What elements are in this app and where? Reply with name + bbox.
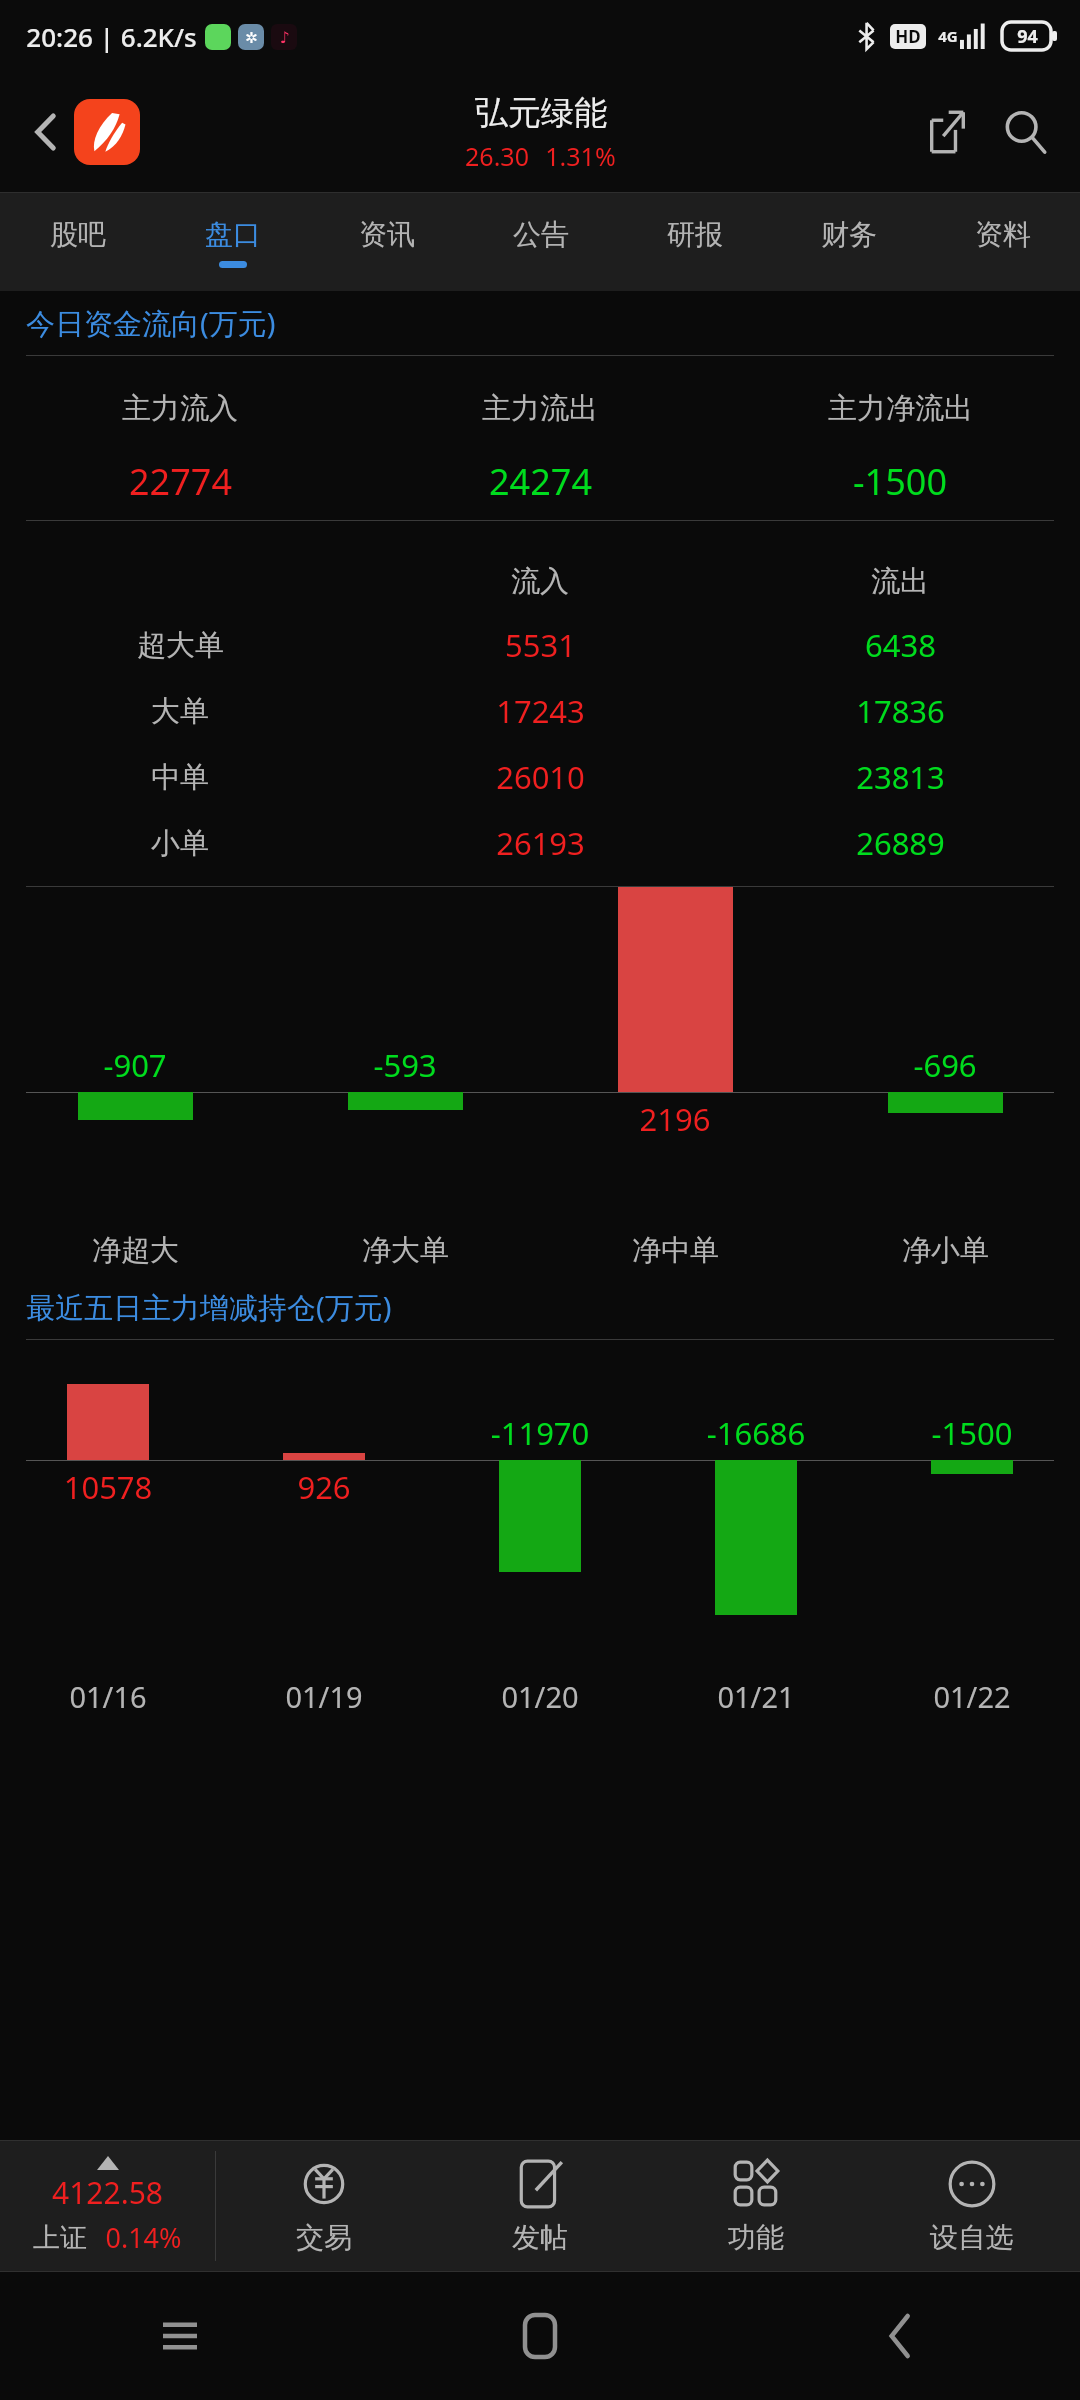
staticText: 22774 xyxy=(129,457,232,506)
staticText: -1500 xyxy=(864,1412,1080,1454)
staticText: 流出 xyxy=(871,563,929,600)
button[interactable]: 主力净流出 xyxy=(720,390,1080,506)
button[interactable]: 小单 xyxy=(0,822,1080,864)
staticText: 大单 xyxy=(151,693,209,730)
staticText: 小单 xyxy=(151,825,209,862)
button[interactable]: 926 xyxy=(216,1340,432,1615)
staticText: 2196 xyxy=(540,1098,810,1140)
button[interactable]: 交易 xyxy=(216,2141,432,2271)
staticText: 26.30 xyxy=(465,139,529,173)
staticText: 净中单 xyxy=(632,1232,719,1269)
staticText: ♪ xyxy=(279,28,290,47)
staticText: 20:26 | 6.2K/s xyxy=(26,19,197,54)
staticText: 26010 xyxy=(496,756,585,798)
staticText: HD xyxy=(895,25,921,48)
staticText: 94 xyxy=(1017,24,1038,49)
button[interactable]: 股吧 xyxy=(0,193,155,291)
button[interactable]: 财务 xyxy=(772,193,926,291)
button[interactable]: -16686 xyxy=(648,1340,864,1615)
button[interactable]: -1500 xyxy=(864,1340,1080,1615)
staticText: 财务 xyxy=(821,217,877,252)
staticText: 设自选 xyxy=(930,2220,1014,2255)
staticText: 17243 xyxy=(496,690,585,732)
button[interactable]: -11970 xyxy=(432,1340,648,1615)
staticText: 中单 xyxy=(151,759,209,796)
button[interactable]: -907 xyxy=(0,887,270,1160)
staticText: 01/16 xyxy=(69,1677,147,1716)
button[interactable]: Back xyxy=(18,104,74,160)
button[interactable]: Back xyxy=(720,2272,1080,2400)
staticText: 交易 xyxy=(296,2220,352,2255)
staticText: 资讯 xyxy=(359,217,415,252)
button[interactable]: 功能 xyxy=(648,2141,864,2271)
staticText: 926 xyxy=(216,1466,432,1508)
button[interactable]: Search xyxy=(990,97,1060,167)
staticText: ✲ xyxy=(245,29,258,46)
staticText: 弘元绿能 xyxy=(475,92,607,134)
button[interactable]: App logo xyxy=(74,99,140,165)
staticText: 最近五日主力增减持仓(万元) xyxy=(26,1287,392,1327)
staticText: 4G xyxy=(938,26,958,46)
staticText: 上证 xyxy=(33,2221,87,2255)
button[interactable]: 4122.58 xyxy=(0,2141,215,2271)
staticText: -593 xyxy=(270,1044,540,1086)
staticText: 17836 xyxy=(856,690,945,732)
staticText: 公告 xyxy=(513,217,569,252)
staticText: -907 xyxy=(0,1044,270,1086)
button[interactable]: 资讯 xyxy=(310,193,464,291)
button[interactable]: 设自选 xyxy=(864,2141,1080,2271)
staticText: -696 xyxy=(810,1044,1080,1086)
staticText: -11970 xyxy=(432,1412,648,1454)
button[interactable]: 2196 xyxy=(540,887,810,1160)
button[interactable]: -696 xyxy=(810,887,1080,1160)
staticText: 01/22 xyxy=(933,1677,1011,1716)
staticText: 资料 xyxy=(975,217,1031,252)
staticText: 净大单 xyxy=(362,1232,449,1269)
staticText: 24274 xyxy=(489,457,592,506)
staticText: 超大单 xyxy=(137,627,224,664)
button[interactable]: 资料 xyxy=(926,193,1080,291)
staticText: 10578 xyxy=(0,1466,216,1508)
staticText: 01/19 xyxy=(285,1677,363,1716)
staticText: 主力流出 xyxy=(482,390,598,427)
button[interactable]: 中单 xyxy=(0,756,1080,798)
button[interactable]: Recents xyxy=(0,2272,360,2400)
button[interactable]: 主力流出 xyxy=(360,390,720,506)
staticText: 盘口 xyxy=(205,217,261,252)
button[interactable]: 公告 xyxy=(464,193,618,291)
button[interactable]: 主力流入 xyxy=(0,390,360,506)
staticText: 主力流入 xyxy=(122,390,238,427)
staticText: 01/20 xyxy=(501,1677,579,1716)
button[interactable]: 超大单 xyxy=(0,624,1080,666)
staticText: 股吧 xyxy=(50,217,106,252)
button[interactable]: 发帖 xyxy=(432,2141,648,2271)
staticText: 流入 xyxy=(511,563,569,600)
staticText: 主力净流出 xyxy=(828,390,973,427)
button[interactable]: Home xyxy=(360,2272,720,2400)
staticText: 6438 xyxy=(865,624,936,666)
button[interactable]: -593 xyxy=(270,887,540,1160)
button[interactable]: 研报 xyxy=(618,193,772,291)
staticText: 4122.58 xyxy=(52,2172,163,2213)
staticText: 26889 xyxy=(856,822,945,864)
staticText: 0.14% xyxy=(105,2219,182,2256)
staticText: 净超大 xyxy=(92,1232,179,1269)
staticText: 研报 xyxy=(667,217,723,252)
staticText: 26193 xyxy=(496,822,585,864)
staticText: 今日资金流向(万元) xyxy=(26,303,276,343)
staticText: 23813 xyxy=(856,756,945,798)
staticText: 1.31% xyxy=(545,139,616,173)
button[interactable]: 盘口 xyxy=(155,193,310,291)
button[interactable]: 大单 xyxy=(0,690,1080,732)
button[interactable]: 10578 xyxy=(0,1340,216,1615)
staticText: 净小单 xyxy=(902,1232,989,1269)
staticText: 功能 xyxy=(728,2220,784,2255)
staticText: 01/21 xyxy=(717,1677,795,1716)
button[interactable]: Share xyxy=(916,100,980,164)
staticText: 5531 xyxy=(505,624,576,666)
staticText: -16686 xyxy=(648,1412,864,1454)
staticText: -1500 xyxy=(853,457,947,506)
staticText: 发帖 xyxy=(512,2220,568,2255)
